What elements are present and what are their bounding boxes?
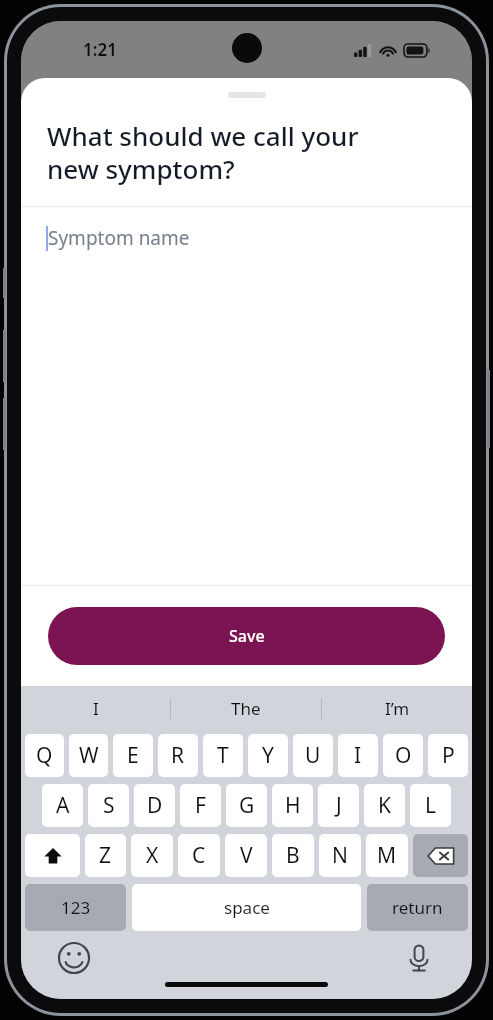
staticText: M [377,841,397,870]
button[interactable]: I’m [322,686,472,730]
button[interactable]: Emoji [57,941,91,975]
staticText: B [286,841,300,870]
staticText: T [217,741,229,770]
staticText: K [378,791,391,820]
staticText: 1:21 [83,38,117,61]
staticText: D [147,791,163,820]
button[interactable]: Q [25,734,64,777]
staticText: L [425,791,437,820]
staticText: A [56,791,70,820]
button[interactable]: R [158,734,198,777]
button[interactable]: X [131,834,173,877]
staticText: J [336,791,342,820]
button[interactable]: F [180,784,221,827]
button[interactable]: U [293,734,333,777]
staticText: G [239,791,255,820]
button[interactable]: 123 [25,884,126,931]
staticText: The [231,697,261,720]
button[interactable]: N [319,834,361,877]
staticText: 123 [61,896,91,919]
staticText: O [395,741,412,770]
button[interactable]: return [367,884,468,931]
staticText: return [392,896,443,919]
staticText: F [195,791,206,820]
button[interactable]: O [383,734,423,777]
staticText: Save [229,625,265,647]
staticText: R [171,741,185,770]
button[interactable]: Dictation [402,941,436,975]
button[interactable]: L [410,784,451,827]
button[interactable]: space [132,884,361,931]
staticText: I’m [385,697,410,720]
button[interactable]: P [428,734,468,777]
button[interactable]: I [338,734,378,777]
staticText: W [79,741,99,770]
button[interactable]: J [318,784,359,827]
button[interactable]: G [226,784,267,827]
button[interactable]: V [225,834,267,877]
button[interactable]: W [69,734,108,777]
staticText: E [127,741,139,770]
staticText: Q [36,741,53,770]
button[interactable]: A [42,784,83,827]
button[interactable]: H [272,784,313,827]
button[interactable]: B [272,834,314,877]
button[interactable]: The [171,686,321,730]
button[interactable]: Backspace [413,834,468,877]
staticText: I [354,741,362,770]
staticText: Z [99,841,112,870]
button[interactable]: Symptom name [21,207,472,269]
button[interactable]: Z [85,834,126,877]
button[interactable]: T [203,734,243,777]
button[interactable]: M [366,834,408,877]
staticText: C [192,841,206,870]
button[interactable]: Shift [25,834,80,877]
button[interactable]: S [88,784,129,827]
button[interactable]: Y [248,734,288,777]
staticText: P [442,741,455,770]
button[interactable]: D [134,784,175,827]
button[interactable]: Save [48,607,445,665]
staticText: Symptom name [48,225,190,251]
button[interactable]: K [364,784,405,827]
staticText: S [103,791,115,820]
button[interactable]: C [178,834,220,877]
staticText: I [93,697,99,720]
button[interactable]: I [21,686,170,730]
staticText: space [224,896,270,919]
button[interactable]: E [113,734,153,777]
staticText: What should we call your new symptom? [47,118,359,187]
staticText: Y [262,741,274,770]
staticText: V [240,841,253,870]
staticText: N [332,841,348,870]
staticText: H [285,791,301,820]
staticText: X [146,841,159,870]
staticText: U [305,741,321,770]
